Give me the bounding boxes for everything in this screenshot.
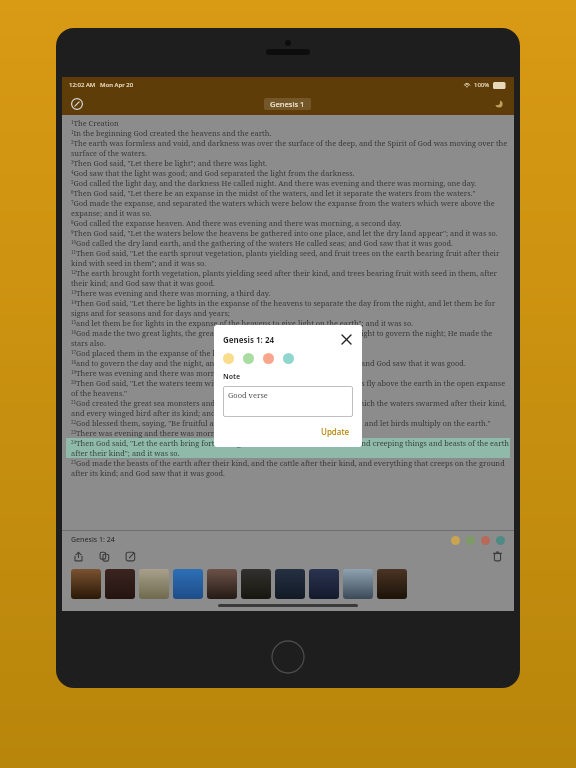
staticText: 7God made the expanse, and separated the…: [71, 198, 510, 218]
button[interactable]: Image: [207, 569, 237, 599]
button[interactable]: Highlight 2: [481, 536, 490, 545]
staticText: 10God called the dry land earth, and the…: [71, 238, 453, 248]
button[interactable]: 25God made the beasts of the earth after…: [66, 458, 510, 478]
staticText: 11Then God said, "Let the earth sprout v…: [71, 248, 510, 268]
button[interactable]: 7God made the expanse, and separated the…: [66, 198, 510, 218]
staticText: 24Then God said, "Let the earth bring fo…: [71, 438, 510, 458]
button[interactable]: Image: [343, 569, 373, 599]
button[interactable]: Close: [340, 333, 353, 346]
button[interactable]: 20Then God said, "Let the waters teem wi…: [66, 378, 510, 398]
staticText: 22God blessed them, saying, "Be fruitful…: [71, 418, 491, 428]
button[interactable]: Image: [377, 569, 407, 599]
button[interactable]: Image: [275, 569, 305, 599]
staticText: 5God called the light day, and the darkn…: [71, 178, 477, 188]
button[interactable]: Copy: [97, 549, 112, 564]
button[interactable]: 3Then God said, "Let there be light"; an…: [66, 158, 510, 168]
button[interactable]: Highlight 0: [451, 536, 460, 545]
button[interactable]: Delete: [490, 549, 505, 564]
button[interactable]: Share: [71, 549, 86, 564]
button[interactable]: Image: [105, 569, 135, 599]
button[interactable]: Image: [173, 569, 203, 599]
staticText: Update: [321, 426, 350, 437]
button[interactable]: Good verse: [223, 386, 353, 417]
staticText: 15and let them be for lights in the expa…: [71, 318, 414, 328]
button[interactable]: 19There was evening and there was mornin…: [66, 368, 510, 378]
button[interactable]: 11Then God said, "Let the earth sprout v…: [66, 248, 510, 268]
staticText: 21God created the great sea monsters and…: [71, 398, 510, 418]
staticText: 100%: [474, 81, 490, 89]
staticText: Genesis 1: 24: [71, 535, 115, 545]
button[interactable]: 17God placed them in the expanse of the …: [66, 348, 510, 358]
button[interactable]: 24Then God said, "Let the earth bring fo…: [66, 438, 510, 458]
staticText: 2The earth was formless and void, and da…: [71, 138, 510, 158]
button[interactable]: Image: [139, 569, 169, 599]
staticText: 13There was evening and there was mornin…: [71, 288, 271, 298]
staticText: 19There was evening and there was mornin…: [71, 368, 275, 378]
button[interactable]: Edit: [123, 549, 138, 564]
button[interactable]: Color 2: [263, 353, 274, 364]
staticText: 6Then God said, "Let there be an expanse…: [71, 188, 476, 198]
staticText: 3Then God said, "Let there be light"; an…: [71, 158, 268, 168]
button[interactable]: 16God made the two great lights, the gre…: [66, 328, 510, 348]
button[interactable]: 5God called the light day, and the darkn…: [66, 178, 510, 188]
button[interactable]: 15and let them be for lights in the expa…: [66, 318, 510, 328]
staticText: 17God placed them in the expanse of the …: [71, 348, 332, 358]
staticText: 25God made the beasts of the earth after…: [71, 458, 510, 478]
button[interactable]: Color 0: [223, 353, 234, 364]
button[interactable]: Highlight 1: [466, 536, 475, 545]
staticText: Note: [223, 372, 241, 382]
staticText: 14Then God said, "Let there be lights in…: [71, 298, 510, 318]
button[interactable]: 12The earth brought forth vegetation, pl…: [66, 268, 510, 288]
button[interactable]: 22God blessed them, saying, "Be fruitful…: [66, 418, 510, 428]
button[interactable]: Image: [71, 569, 101, 599]
button[interactable]: 8God called the expanse heaven. And ther…: [66, 218, 510, 228]
staticText: 12The earth brought forth vegetation, pl…: [71, 268, 510, 288]
button[interactable]: 2The earth was formless and void, and da…: [66, 138, 510, 158]
button[interactable]: Highlight 3: [496, 536, 505, 545]
staticText: 8God called the expanse heaven. And ther…: [71, 218, 402, 228]
button[interactable]: 10God called the dry land earth, and the…: [66, 238, 510, 248]
staticText: Good verse: [228, 390, 268, 400]
staticText: 12:02 AM Mon Apr 20: [69, 81, 134, 89]
button[interactable]: 23There was evening and there was mornin…: [66, 428, 510, 438]
staticText: 23There was evening and there was mornin…: [71, 428, 268, 438]
staticText: 1In the beginning God created the heaven…: [71, 128, 272, 138]
button[interactable]: 6Then God said, "Let there be an expanse…: [66, 188, 510, 198]
staticText: 16God made the two great lights, the gre…: [71, 328, 510, 348]
button[interactable]: Notes: [70, 97, 84, 111]
button[interactable]: 21God created the great sea monsters and…: [66, 398, 510, 418]
button[interactable]: Color 3: [283, 353, 294, 364]
button[interactable]: Image: [309, 569, 339, 599]
button[interactable]: Color 1: [243, 353, 254, 364]
button[interactable]: Home: [271, 640, 305, 674]
button[interactable]: 9Then God said, "Let the waters below th…: [66, 228, 510, 238]
staticText: 20Then God said, "Let the waters teem wi…: [71, 378, 510, 398]
staticText: 4God saw that the light was good; and Go…: [71, 168, 355, 178]
button[interactable]: 1The Creation: [66, 118, 510, 128]
staticText: 9Then God said, "Let the waters below th…: [71, 228, 498, 238]
button[interactable]: 13There was evening and there was mornin…: [66, 288, 510, 298]
button[interactable]: 1In the beginning God created the heaven…: [66, 128, 510, 138]
button[interactable]: Genesis 1: [270, 99, 305, 109]
staticText: 1The Creation: [71, 118, 119, 128]
button[interactable]: 18and to govern the day and the night, a…: [66, 358, 510, 368]
button[interactable]: Update: [318, 424, 353, 439]
button[interactable]: Image: [241, 569, 271, 599]
button[interactable]: Dark mode: [492, 97, 506, 111]
staticText: Genesis 1: [270, 99, 305, 109]
button[interactable]: 4God saw that the light was good; and Go…: [66, 168, 510, 178]
staticText: 18and to govern the day and the night, a…: [71, 358, 466, 368]
staticText: Genesis 1: 24: [223, 334, 275, 345]
button[interactable]: 14Then God said, "Let there be lights in…: [66, 298, 510, 318]
